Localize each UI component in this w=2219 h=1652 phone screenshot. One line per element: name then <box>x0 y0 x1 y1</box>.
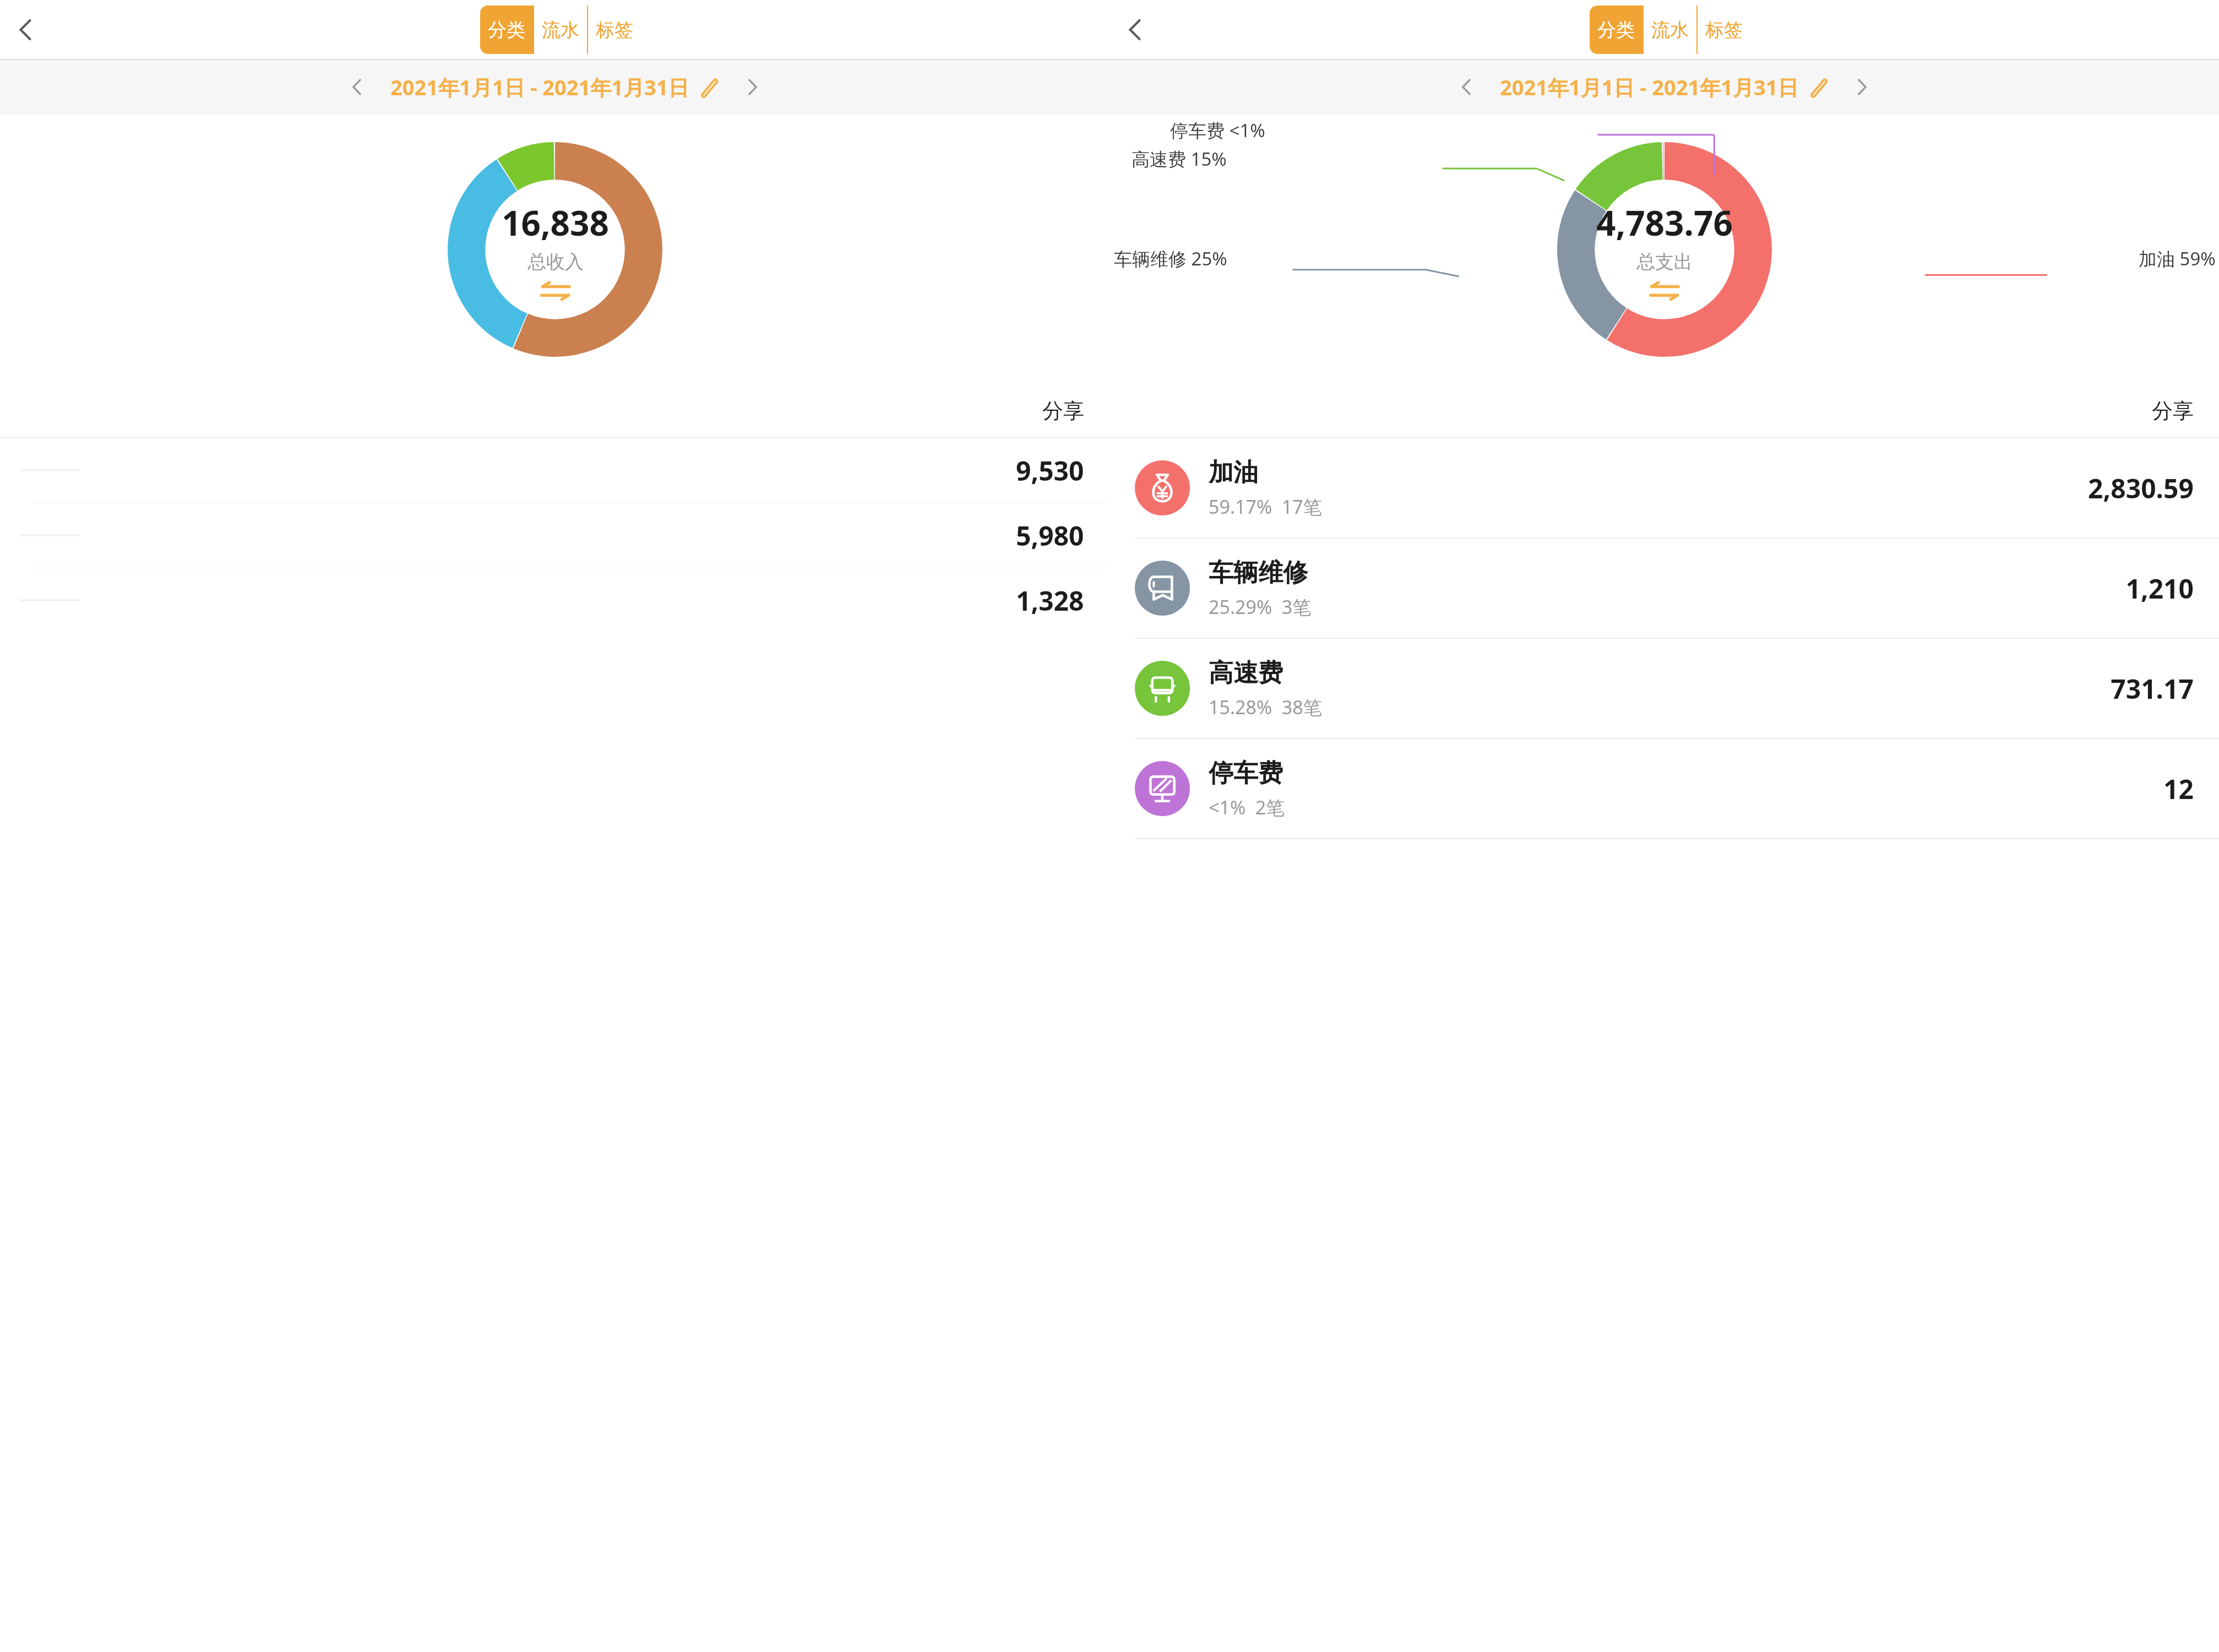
staticText: 总支出 <box>1636 250 1693 274</box>
staticText: 分类 <box>488 18 525 42</box>
button[interactable]: 标签 <box>1698 6 1750 54</box>
staticText: 2021年1月1日 - 2021年1月31日 <box>1500 73 1799 101</box>
staticText: 分类 <box>1597 18 1635 42</box>
staticText: 731.17 <box>2111 671 2194 707</box>
staticText: 4,783.76 <box>1596 199 1733 246</box>
button[interactable]: Back <box>1119 14 1151 46</box>
staticText: 1,328 <box>1016 583 1084 618</box>
staticText: 2021年1月1日 - 2021年1月31日 <box>390 73 689 101</box>
staticText: 流水 <box>542 18 579 42</box>
button[interactable]: 分类 <box>480 6 533 54</box>
button[interactable]: Next period <box>1847 73 1876 101</box>
button[interactable]: 流水 <box>534 6 587 54</box>
staticText: 59.17% 17笔 <box>1209 494 1322 519</box>
staticText: <1% 2笔 <box>1209 795 1285 820</box>
button[interactable]: 分类 <box>1590 6 1643 54</box>
staticText: 1,210 <box>2125 570 2194 606</box>
staticText: 加油 59% <box>2139 246 2216 271</box>
button[interactable]: 标签 <box>588 6 641 54</box>
staticText: 加油 <box>1209 457 1258 488</box>
staticText: 25.29% 3笔 <box>1209 594 1312 619</box>
staticText: 车辆维修 <box>1209 557 1308 589</box>
button[interactable]: 流水 <box>1644 6 1696 54</box>
button[interactable]: Previous period <box>1453 73 1481 101</box>
staticText: 标签 <box>1705 18 1743 42</box>
staticText: 停车费 <1% <box>1170 118 1265 143</box>
button[interactable]: Swap <box>1649 281 1680 300</box>
button[interactable]: Next period <box>738 73 766 101</box>
button[interactable]: 分享 <box>2152 398 2194 424</box>
button[interactable]: Back <box>10 14 42 46</box>
button[interactable]: 9,530 <box>0 438 1109 502</box>
button[interactable]: 车辆维修 <box>1109 539 2219 638</box>
staticText: 流水 <box>1651 18 1689 42</box>
button[interactable]: Swap <box>540 281 571 300</box>
staticText: 9,530 <box>1016 453 1084 488</box>
button[interactable]: Edit <box>1807 76 1829 98</box>
staticText: 16,838 <box>502 199 609 246</box>
staticText: 标签 <box>596 18 633 42</box>
staticText: 停车费 <box>1209 758 1283 789</box>
button[interactable]: 分享 <box>1042 398 1084 424</box>
button[interactable]: 1,328 <box>0 568 1109 632</box>
button[interactable]: 高速费 <box>1109 639 2219 738</box>
staticText: 2,830.59 <box>2088 470 2194 506</box>
staticText: 车辆维修 25% <box>1114 246 1227 271</box>
staticText: 高速费 <box>1209 657 1283 689</box>
staticText: 分享 <box>1042 398 1084 424</box>
button[interactable]: Edit <box>697 76 719 98</box>
button[interactable]: 加油 <box>1109 438 2219 537</box>
staticText: 高速费 15% <box>1132 146 1227 171</box>
staticText: 总收入 <box>527 250 584 274</box>
staticText: 分享 <box>2152 398 2194 424</box>
staticText: 15.28% 38笔 <box>1209 694 1322 720</box>
button[interactable]: 停车费 <box>1109 739 2219 838</box>
staticText: 12 <box>2163 771 2194 807</box>
button[interactable]: Previous period <box>343 73 372 101</box>
staticText: 5,980 <box>1016 518 1084 553</box>
button[interactable]: 5,980 <box>0 503 1109 567</box>
